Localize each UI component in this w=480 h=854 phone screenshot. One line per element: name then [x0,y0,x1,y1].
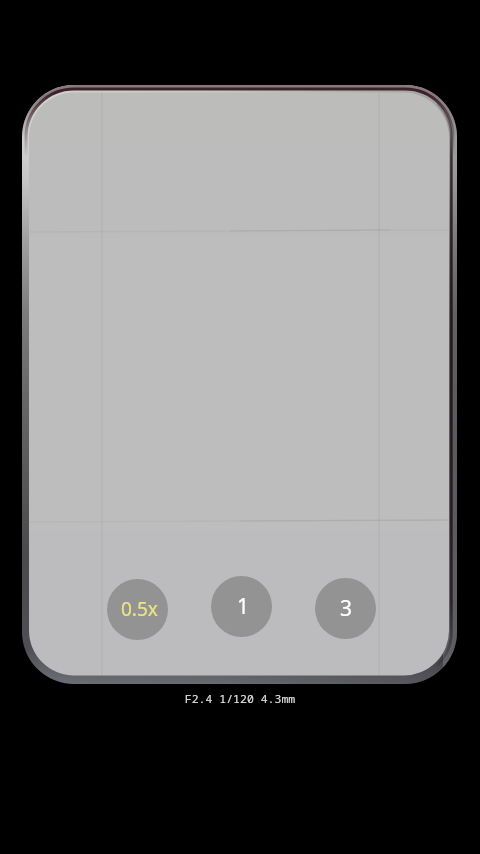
staticText: 3 [340,594,353,623]
button[interactable]: 3 [315,578,376,639]
staticText: 1 [237,592,250,621]
button[interactable]: 1 [211,576,272,637]
staticText: 0.5x [121,596,158,622]
button[interactable]: 0.5x [107,579,168,640]
staticText: F2.4 1/120 4.3mm [0,691,480,707]
